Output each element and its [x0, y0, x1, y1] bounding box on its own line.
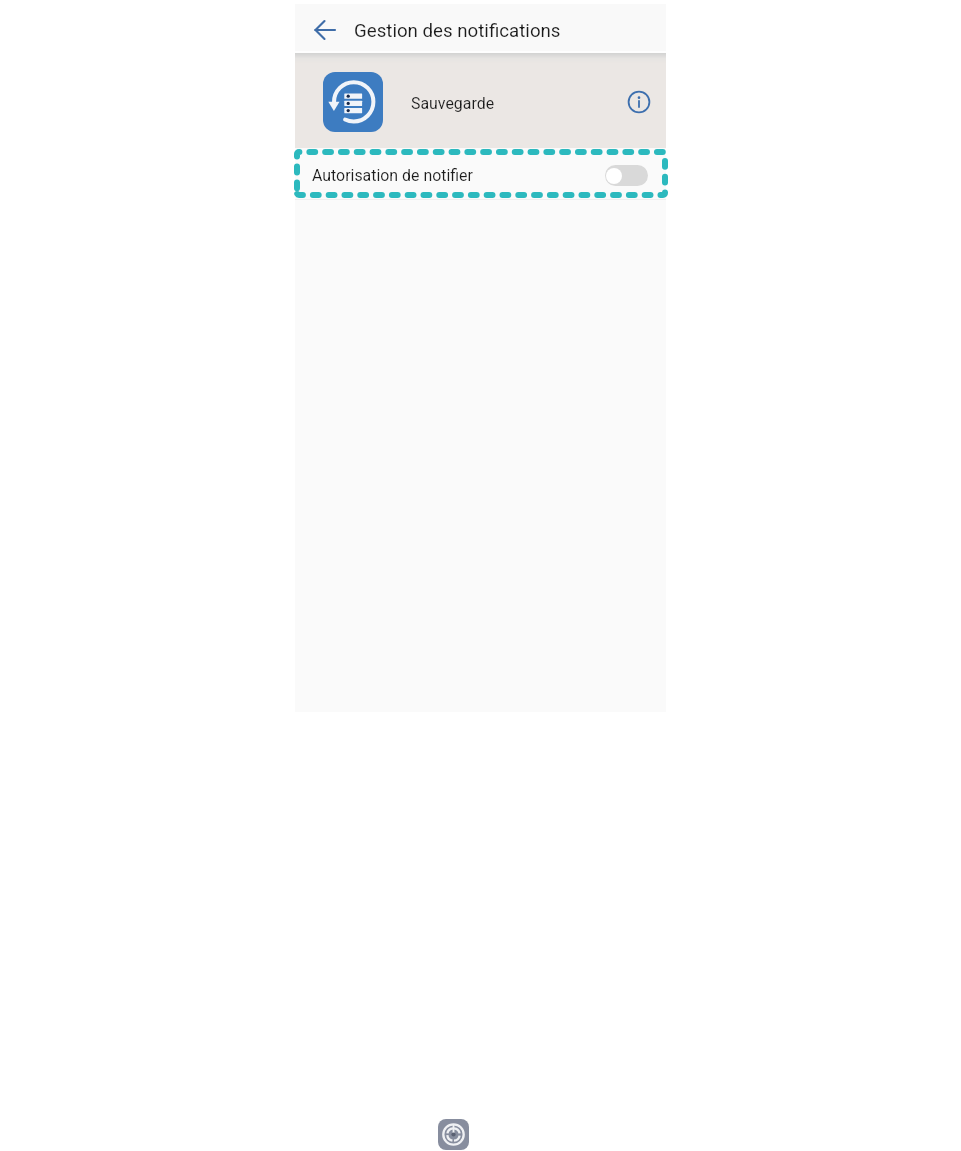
staticText: Gestion des notifications: [354, 20, 561, 42]
other: Logo: [438, 1119, 469, 1150]
button[interactable]: Sauvegarde: [295, 53, 666, 148]
staticText: Autorisation de notifier: [312, 166, 473, 185]
button[interactable]: Informations: [626, 89, 652, 115]
staticText: Sauvegarde: [411, 94, 495, 113]
button[interactable]: Retour: [311, 16, 339, 44]
button[interactable]: Autorisation de notifier: [605, 165, 648, 186]
button[interactable]: Autorisation de notifier: [295, 148, 666, 199]
